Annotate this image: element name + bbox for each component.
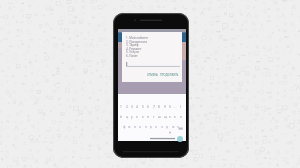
staticText: ш (158, 115, 161, 119)
staticText: 9 (164, 105, 166, 109)
staticText: - (174, 105, 176, 109)
staticText: й (120, 115, 122, 119)
staticText: 4 (136, 105, 138, 109)
button[interactable]: 2 (125, 105, 130, 109)
staticText: 3 (131, 105, 133, 109)
staticText: ПРОДОЛЖИТЬ (160, 73, 179, 77)
staticText: к (136, 115, 138, 119)
button[interactable] (126, 61, 180, 68)
button[interactable]: н (146, 115, 151, 119)
staticText: 4. Роуминг (126, 47, 142, 51)
button[interactable]: у (130, 115, 135, 119)
button[interactable]: 4. Роуминг (126, 47, 176, 51)
staticText: 6 (147, 105, 149, 109)
button[interactable]: ж (171, 125, 176, 129)
staticText: ы (128, 125, 131, 129)
button[interactable]: 8 (157, 105, 162, 109)
staticText: 1 (120, 105, 122, 109)
button[interactable]: д (165, 125, 170, 129)
staticText: л (161, 125, 163, 129)
staticText: щ (164, 115, 167, 119)
button[interactable]: е (141, 115, 146, 119)
button[interactable]: э (176, 125, 181, 129)
button[interactable]: / (179, 105, 184, 109)
button[interactable]: ш (157, 115, 162, 119)
staticText: в (134, 125, 136, 129)
button[interactable]: 2. Предоплата (126, 40, 176, 44)
staticText: а (139, 125, 141, 129)
button[interactable]: 3. Тариф (126, 43, 176, 47)
staticText: п (145, 125, 147, 129)
button[interactable]: 9 (163, 105, 168, 109)
staticText: 8 (158, 105, 160, 109)
staticText: о (155, 125, 157, 129)
button[interactable]: в (133, 125, 138, 129)
button[interactable]: Enter (177, 136, 183, 142)
button[interactable]: 6. Пакет (126, 54, 176, 58)
button[interactable]: 7 (152, 105, 157, 109)
staticText: з (169, 115, 171, 119)
button[interactable]: п (144, 125, 149, 129)
staticText: ъ (180, 115, 182, 119)
staticText: 2 (126, 105, 128, 109)
staticText: 5. Услуги (126, 50, 139, 54)
staticText: 1. Мой кабинет (126, 36, 149, 40)
staticText: ОТМЕНА (147, 73, 158, 77)
button[interactable]: 5 (141, 105, 146, 109)
button[interactable]: ф (122, 125, 127, 129)
staticText: е (142, 115, 144, 119)
button[interactable]: л (160, 125, 165, 129)
staticText: г (153, 115, 155, 119)
staticText: х (174, 115, 176, 119)
button[interactable]: х (173, 115, 178, 119)
button[interactable]: ПРОДОЛЖИТЬ (160, 73, 179, 77)
staticText: д (166, 125, 168, 129)
button[interactable]: к (135, 115, 140, 119)
button[interactable]: о (154, 125, 159, 129)
button[interactable]: 0 (168, 105, 173, 109)
button[interactable]: ОТМЕНА (147, 73, 158, 77)
button[interactable]: ы (127, 125, 132, 129)
button[interactable]: г (152, 115, 157, 119)
staticText: 7 (153, 105, 155, 109)
button[interactable]: ц (125, 115, 130, 119)
staticText: / (180, 105, 182, 109)
button[interactable]: ъ (179, 115, 184, 119)
staticText: 5 (142, 105, 144, 109)
button[interactable]: 1. Мой кабинет (126, 36, 176, 40)
button[interactable]: з (168, 115, 173, 119)
button[interactable]: щ (163, 115, 168, 119)
staticText: ф (123, 125, 126, 129)
button[interactable]: 3 (130, 105, 135, 109)
staticText: ц (126, 115, 128, 119)
staticText: э (177, 125, 179, 129)
button[interactable]: 6 (146, 105, 151, 109)
button[interactable]: й (119, 115, 124, 119)
staticText: р (150, 125, 152, 129)
staticText: 3. Тариф (126, 43, 139, 47)
button[interactable]: - (173, 105, 178, 109)
staticText: 2. Предоплата (126, 40, 147, 44)
staticText: н (147, 115, 149, 119)
button[interactable]: 4 (135, 105, 140, 109)
button[interactable]: 5. Услуги (126, 50, 176, 54)
staticText: 6. Пакет (126, 54, 138, 58)
button[interactable]: а (138, 125, 143, 129)
staticText: ж (172, 125, 175, 129)
staticText: у (131, 115, 133, 119)
button[interactable]: 1 (119, 105, 124, 109)
staticText: 0 (169, 105, 171, 109)
button[interactable]: р (149, 125, 154, 129)
